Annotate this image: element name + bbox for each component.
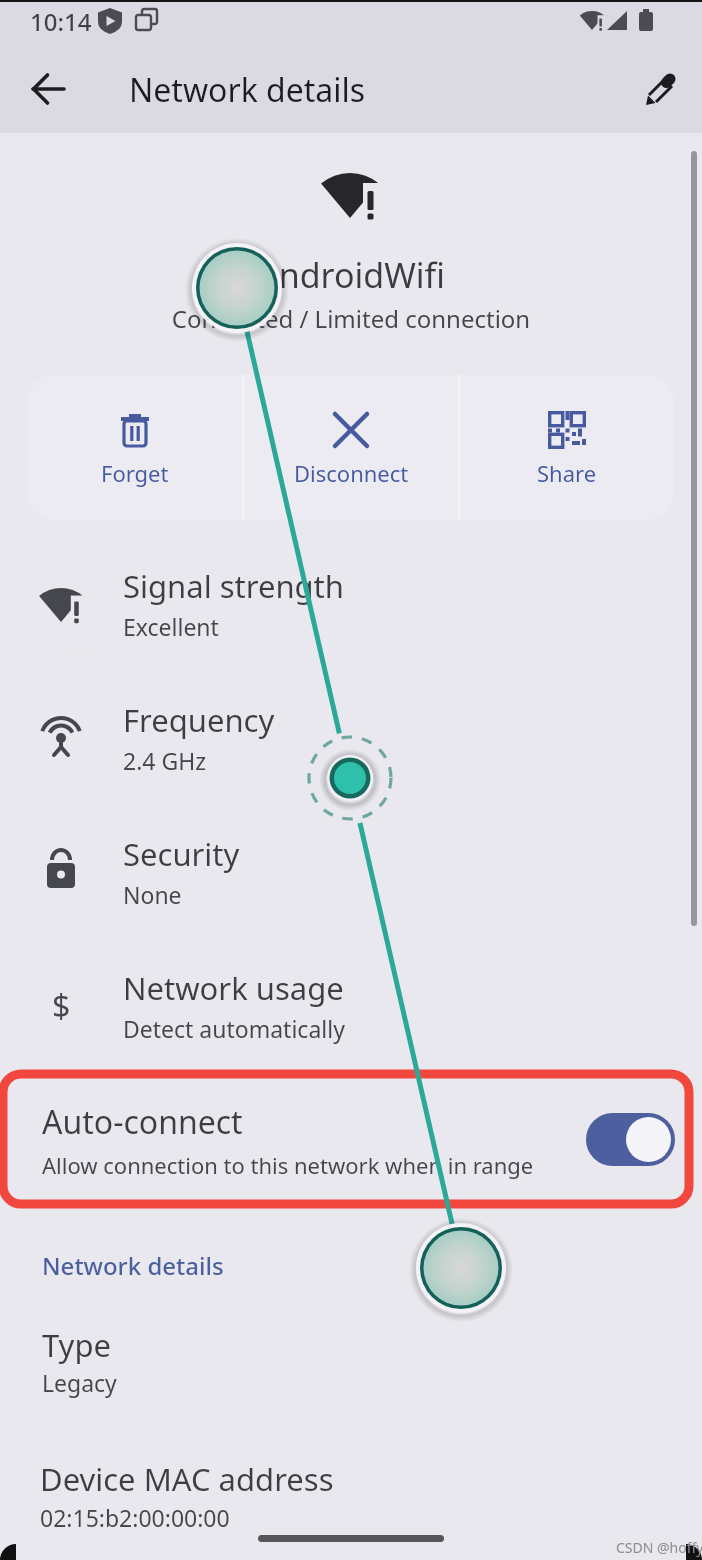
staticText: Auto-connect [42,1100,243,1144]
staticText: Security [123,833,240,875]
staticText: Network usage [123,967,344,1009]
staticText: Network details [129,68,366,112]
button[interactable]: Auto-connect [0,1078,702,1202]
staticText: Legacy [42,1367,117,1398]
staticText: Signal strength [123,565,344,607]
staticText: $ [52,984,71,1028]
button[interactable]: Device MAC address [0,1444,702,1556]
staticText: Network details [42,1249,224,1282]
button[interactable]: Security [0,822,702,942]
button[interactable]: Share [460,375,674,520]
staticText: Forget [101,458,169,488]
staticText: Connected / Limited connection [0,302,702,335]
staticText: Share [537,458,597,488]
staticText: Frequency [123,699,275,741]
staticText: 2.4 GHz [123,745,207,776]
button[interactable] [24,65,72,113]
staticText: Allow connection to this network when in… [42,1150,534,1180]
staticText: Type [42,1324,111,1366]
button[interactable]: Signal strength [0,554,702,674]
staticText: Disconnect [294,458,409,488]
button[interactable]: Disconnect [244,375,458,520]
staticText: AndroidWifi [0,252,702,298]
staticText: Excellent [123,611,219,642]
button[interactable]: $ [0,956,702,1076]
staticText: 10:14 [30,5,92,38]
staticText: None [123,879,182,910]
staticText: CSDN @hoffy [616,1538,702,1557]
button[interactable]: Forget [28,375,242,520]
staticText: 02:15:b2:00:00:00 [40,1502,230,1533]
button[interactable]: Frequency [0,688,702,808]
button[interactable]: Type [0,1310,702,1420]
staticText: Device MAC address [40,1458,334,1500]
button[interactable] [637,64,685,112]
staticText: Detect automatically [123,1013,345,1044]
